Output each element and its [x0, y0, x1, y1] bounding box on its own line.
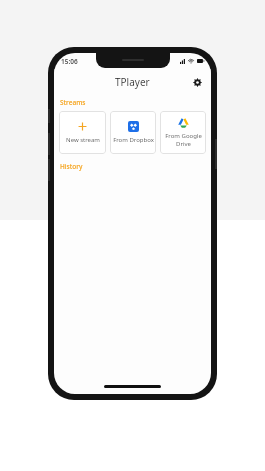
staticText: History: [60, 162, 83, 171]
staticText: TPlayer: [115, 75, 150, 89]
button[interactable]: New stream: [59, 111, 106, 154]
staticText: From Dropbox: [113, 136, 154, 144]
button[interactable]: Settings: [189, 74, 205, 90]
staticText: From Google Drive: [165, 132, 202, 148]
button[interactable]: From Google Drive: [160, 111, 206, 154]
staticText: 15:06: [61, 57, 78, 66]
staticText: New stream: [66, 136, 100, 144]
button[interactable]: From Dropbox: [110, 111, 156, 154]
staticText: Streams: [60, 98, 86, 107]
